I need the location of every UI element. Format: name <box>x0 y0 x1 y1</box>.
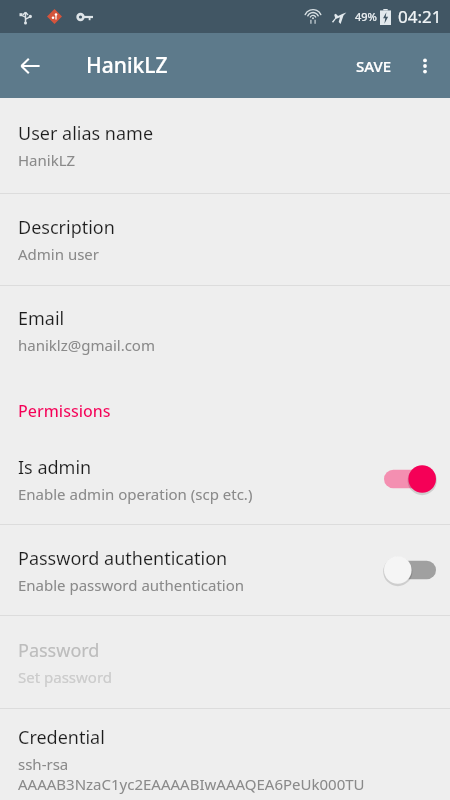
button: Password <box>0 616 450 708</box>
staticText: 49% <box>355 9 377 24</box>
button[interactable]: Credential <box>0 709 450 794</box>
button[interactable]: Email <box>0 286 450 374</box>
button[interactable]: Password authentication <box>0 525 450 615</box>
other: Off <box>384 555 436 585</box>
staticText: Is admin <box>18 455 92 480</box>
staticText: User alias name <box>18 121 154 146</box>
button[interactable]: User alias name <box>0 98 450 193</box>
staticText: ssh-rsa AAAAB3NzaC1yc2EAAAABIwAAAQEA6PeU… <box>18 754 365 794</box>
button[interactable]: SAVE <box>346 44 402 88</box>
other: On <box>384 464 436 494</box>
staticText: Set password <box>18 667 113 687</box>
staticText: SAVE <box>356 56 392 76</box>
staticText: Description <box>18 215 115 240</box>
staticText: Credential <box>18 725 105 750</box>
staticText: Enable password authentication <box>18 575 245 595</box>
button[interactable]: Back <box>6 42 54 90</box>
button[interactable]: Description <box>0 194 450 285</box>
button[interactable]: Is admin <box>0 434 450 524</box>
staticText: Permissions <box>18 400 111 422</box>
staticText: HanikLZ <box>18 150 76 170</box>
staticText: Password <box>18 638 100 663</box>
staticText: Email <box>18 306 65 331</box>
staticText: Admin user <box>18 244 99 264</box>
staticText: Enable admin operation (scp etc.) <box>18 484 253 504</box>
staticText: HanikLZ <box>86 51 168 80</box>
staticText: 04:21 <box>398 5 442 28</box>
staticText: Password authentication <box>18 546 228 571</box>
staticText: haniklz@gmail.com <box>18 335 155 355</box>
button[interactable]: More options <box>402 43 448 89</box>
